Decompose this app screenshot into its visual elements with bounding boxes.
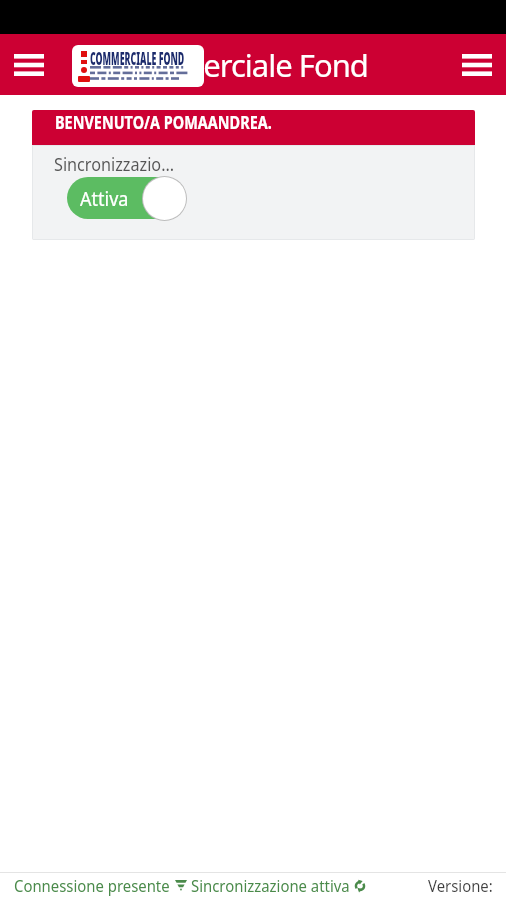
staticText: Sincronizzazio... <box>54 152 175 177</box>
staticText: BENVENUTO/A POMAANDREA. <box>55 111 273 134</box>
staticText: Connessione presente <box>14 875 170 897</box>
staticText: Commerciale Fond <box>111 44 368 86</box>
staticText: Sincronizzazione attiva <box>191 875 350 897</box>
staticText: Versione: <box>428 875 493 897</box>
staticText: COMMERCIALE FOND <box>90 46 155 71</box>
button[interactable]: Attiva <box>67 175 191 221</box>
button[interactable]: Overflow menu <box>455 43 499 87</box>
button[interactable]: Menu <box>7 43 51 87</box>
staticText: Attiva <box>80 185 129 212</box>
